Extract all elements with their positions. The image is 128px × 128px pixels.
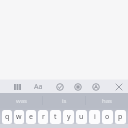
button[interactable]: has [86, 93, 128, 108]
button[interactable]: e [26, 110, 36, 124]
staticText: u [79, 112, 84, 122]
button[interactable]: Close keyboard [113, 81, 124, 92]
staticText: e [29, 112, 33, 122]
staticText: is [62, 97, 67, 105]
staticText: r [42, 112, 45, 122]
button[interactable]: w [14, 110, 24, 124]
button[interactable]: u [76, 110, 87, 124]
button[interactable]: q [2, 110, 12, 124]
button[interactable]: Text formatting [32, 81, 44, 93]
button[interactable]: r [38, 110, 48, 124]
button[interactable]: Keyboard layouts [12, 81, 23, 92]
staticText: y [67, 112, 71, 122]
staticText: has [102, 97, 112, 105]
staticText: p [118, 112, 123, 122]
button[interactable]: is [43, 93, 85, 108]
staticText: Aa [34, 82, 43, 92]
button[interactable]: was [0, 93, 42, 108]
button[interactable]: i [89, 110, 100, 124]
button[interactable]: o [102, 110, 113, 124]
button[interactable]: Camera [72, 81, 83, 92]
staticText: t [54, 112, 57, 122]
staticText: q [5, 112, 10, 122]
staticText: was [16, 97, 27, 105]
button[interactable]: Stickers [54, 81, 65, 92]
staticText: o [105, 112, 110, 122]
staticText: i [94, 112, 96, 122]
button[interactable]: p [115, 110, 126, 124]
staticText: w [16, 112, 22, 122]
button[interactable]: Settings [90, 81, 101, 92]
button[interactable]: t [50, 110, 61, 124]
button[interactable]: y [63, 110, 74, 124]
